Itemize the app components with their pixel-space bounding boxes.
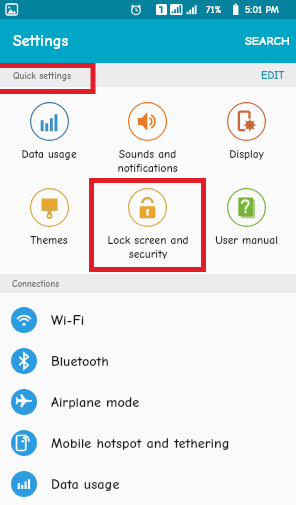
- staticText: Bluetooth: [51, 353, 109, 369]
- staticText: EDIT: [261, 69, 285, 82]
- staticText: Display: [229, 148, 264, 161]
- staticText: Lock screen and security: [107, 234, 189, 259]
- staticText: Quick settings: [13, 70, 71, 81]
- button[interactable]: Airplane mode: [0, 381, 296, 422]
- staticText: Airplane mode: [51, 394, 140, 410]
- staticText: Connections: [12, 279, 59, 289]
- button[interactable]: Data usage: [0, 87, 98, 173]
- staticText: 71%: [206, 4, 222, 16]
- button[interactable]: Data usage: [0, 463, 296, 504]
- button[interactable]: Wi-Fi: [0, 299, 296, 340]
- button[interactable]: Themes: [0, 173, 98, 259]
- staticText: 5:01 PM: [245, 4, 279, 16]
- staticText: User manual: [215, 234, 278, 247]
- staticText: Themes: [30, 234, 68, 247]
- staticText: SEARCH: [245, 34, 290, 48]
- button[interactable]: SEARCH: [239, 23, 296, 59]
- button[interactable]: Lock screen and security: [98, 173, 197, 259]
- staticText: Mobile hotspot and tethering: [51, 435, 230, 451]
- button[interactable]: EDIT: [250, 64, 296, 87]
- button[interactable]: User manual: [197, 173, 296, 259]
- button[interactable]: Sounds and notifications: [98, 87, 197, 173]
- staticText: Sounds and notifications: [117, 148, 178, 173]
- button[interactable]: Bluetooth: [0, 340, 296, 381]
- staticText: Data usage: [21, 148, 77, 161]
- button[interactable]: Mobile hotspot and tethering: [0, 422, 296, 463]
- button[interactable]: Display: [197, 87, 296, 173]
- staticText: Wi-Fi: [51, 312, 85, 328]
- staticText: Settings: [13, 32, 69, 50]
- staticText: Data usage: [51, 476, 120, 492]
